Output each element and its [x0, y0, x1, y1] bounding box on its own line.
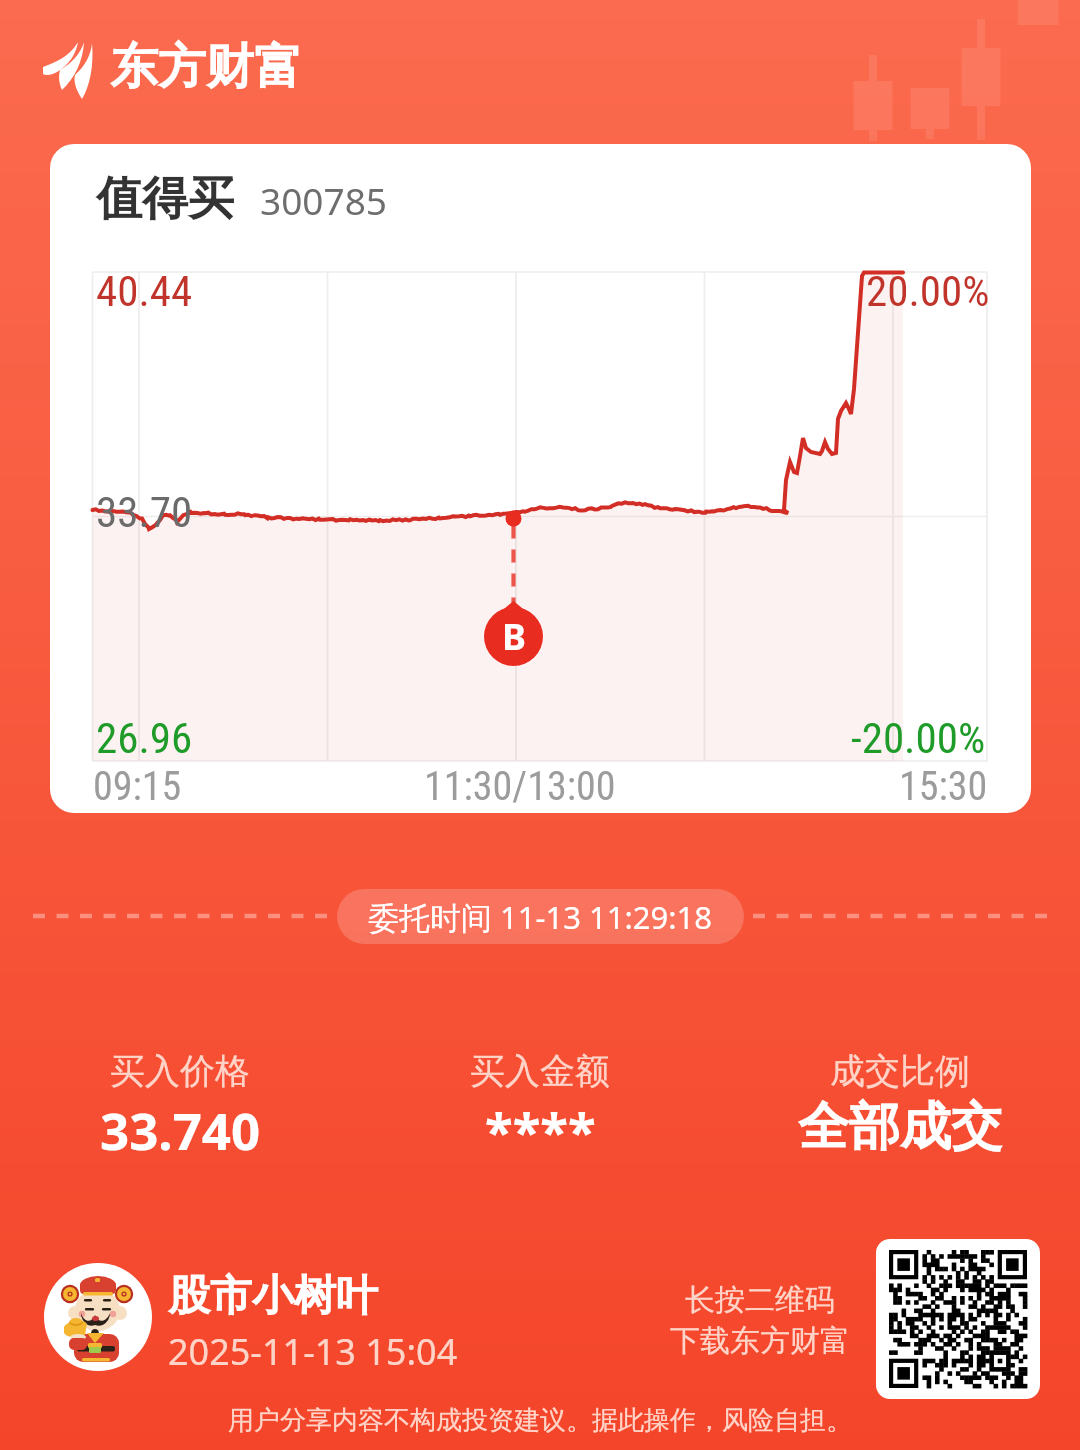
button[interactable]: 用户头像 股市小树叶 [44, 1263, 152, 1371]
staticText: 300785 [260, 175, 387, 225]
staticText: 33.70 [96, 487, 193, 537]
staticText: 20.00% [866, 266, 990, 316]
staticText: 11:30/13:00 [424, 763, 616, 810]
button[interactable]: 东方财富 [41, 40, 302, 100]
button[interactable]: 委托时间 11-13 11:29:18 [337, 889, 744, 944]
staticText: 买入金额 [470, 1049, 610, 1093]
button[interactable]: 买入金额 [360, 1049, 720, 1164]
button[interactable]: 股市小树叶 [168, 1270, 458, 1376]
staticText: 2025-11-13 15:04 [168, 1327, 458, 1376]
staticText: B [502, 612, 526, 661]
staticText: 委托时间 11-13 11:29:18 [368, 896, 713, 938]
staticText: 长按二维码 [685, 1281, 835, 1319]
staticText: 下载东方财富 [670, 1322, 850, 1360]
staticText: **** [485, 1095, 596, 1164]
staticText: 股市小树叶 [168, 1270, 378, 1323]
staticText: 33.740 [100, 1095, 261, 1164]
staticText: 用户分享内容不构成投资建议。据此操作，风险自担。 [228, 1404, 852, 1437]
staticText: 40.44 [96, 266, 193, 316]
staticText: 全部成交 [798, 1095, 1002, 1159]
staticText: 09:15 [93, 763, 182, 810]
button[interactable] [50, 144, 1031, 813]
button[interactable]: 长按二维码下载东方财富 [876, 1239, 1040, 1399]
staticText: -20.00% [851, 713, 986, 763]
staticText: 26.96 [96, 713, 193, 763]
button[interactable]: 成交比例 [720, 1049, 1080, 1159]
button[interactable]: 买入价格 [0, 1049, 360, 1164]
staticText: 买入价格 [110, 1049, 250, 1093]
staticText: 15:30 [899, 763, 988, 810]
staticText: 值得买 [96, 170, 234, 228]
staticText: 成交比例 [830, 1049, 970, 1093]
staticText: 东方财富 [110, 37, 302, 97]
